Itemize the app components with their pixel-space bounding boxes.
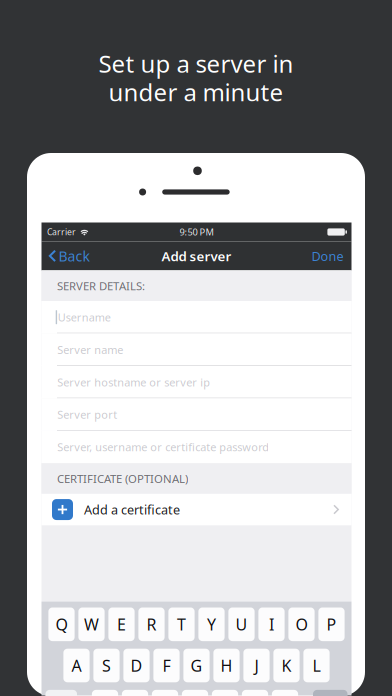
button[interactable]: H <box>213 649 240 682</box>
staticText: P <box>326 613 336 635</box>
button[interactable]: X <box>122 690 148 696</box>
staticText: U <box>235 613 247 635</box>
button[interactable]: S <box>93 649 120 682</box>
button[interactable]: Add a certificate <box>41 494 351 525</box>
button[interactable]: R <box>138 607 165 641</box>
staticText: S <box>102 655 111 676</box>
button[interactable]: Back <box>41 241 97 270</box>
staticText: Server name <box>57 342 123 357</box>
staticText: Username <box>58 310 111 325</box>
button[interactable]: C <box>152 690 178 696</box>
button[interactable]: Y <box>198 607 225 641</box>
button[interactable]: K <box>273 649 300 682</box>
staticText: Add server <box>161 247 231 265</box>
staticText: E <box>117 613 126 635</box>
staticText: Server port <box>57 407 117 422</box>
staticText: L <box>312 655 320 676</box>
button[interactable]: F <box>153 649 180 682</box>
staticText: D <box>130 655 142 676</box>
staticText: CERTIFICATE (OPTIONAL) <box>57 471 188 486</box>
button[interactable]: O <box>288 607 315 641</box>
button[interactable]: E <box>108 607 135 641</box>
button[interactable] <box>45 690 77 696</box>
button[interactable]: Q <box>48 607 75 641</box>
button[interactable]: M <box>272 690 298 696</box>
button[interactable]: B <box>212 690 238 696</box>
button[interactable]: V <box>182 690 208 696</box>
staticText: Add a certificate <box>84 501 180 518</box>
staticText: Carrier <box>47 226 76 238</box>
staticText: under a minute <box>108 76 283 108</box>
button[interactable]: D <box>123 649 150 682</box>
button[interactable]: P <box>318 607 345 641</box>
staticText: Back <box>58 246 89 266</box>
button[interactable]: T <box>168 607 195 641</box>
button[interactable]: J <box>243 649 270 682</box>
button[interactable]: N <box>242 690 268 696</box>
staticText: F <box>162 655 170 676</box>
staticText: A <box>71 655 81 676</box>
staticText: J <box>254 655 258 676</box>
button[interactable]: L <box>303 649 330 682</box>
staticText: Y <box>207 613 216 635</box>
button[interactable]: Done <box>303 241 351 270</box>
button[interactable]: U <box>228 607 255 641</box>
staticText: 9:50 PM <box>179 226 213 238</box>
staticText: Done <box>311 247 343 265</box>
button[interactable]: Z <box>92 690 118 696</box>
staticText: Q <box>55 613 67 635</box>
staticText: R <box>146 613 156 635</box>
button[interactable] <box>313 690 347 696</box>
button[interactable]: A <box>63 649 90 682</box>
staticText: SERVER DETAILS: <box>57 278 145 293</box>
staticText: G <box>190 655 202 676</box>
button[interactable]: W <box>78 607 105 641</box>
staticText: W <box>84 613 99 635</box>
staticText: Server hostname or server ip <box>57 375 210 390</box>
button[interactable]: G <box>183 649 210 682</box>
staticText: Server, username or certificate password <box>57 440 269 454</box>
staticText: T <box>177 613 186 635</box>
button[interactable]: I <box>258 607 285 641</box>
staticText: K <box>281 655 291 676</box>
staticText: I <box>269 613 274 635</box>
staticText: O <box>295 613 307 635</box>
staticText: Set up a server in <box>98 47 293 80</box>
staticText: H <box>220 655 232 676</box>
